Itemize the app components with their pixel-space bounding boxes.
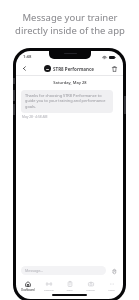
staticText: Saturday, May 28 (53, 80, 87, 85)
staticText: Message... (25, 268, 44, 273)
button[interactable]: Exercise (38, 278, 59, 293)
button[interactable]: Photos (80, 278, 101, 293)
staticText: More (108, 288, 115, 291)
button[interactable]: Back (20, 64, 29, 73)
staticText: May 28 · 4:58 AM (22, 115, 48, 119)
button[interactable]: Delete conversation (110, 64, 119, 73)
button[interactable]: Attach file (110, 267, 118, 275)
staticText: Message your trainer (22, 11, 118, 24)
staticText: directly inside of the app (15, 24, 125, 37)
staticText: Exercise (44, 288, 54, 291)
staticText: STR8 Performance (53, 66, 94, 72)
staticText: Thanks for choosing STR8 Performance to … (25, 93, 109, 110)
staticText: S8 (46, 67, 49, 70)
button[interactable]: Dashboard (17, 278, 38, 293)
button[interactable]: S8 (44, 65, 94, 72)
staticText: Track (66, 288, 73, 291)
button[interactable]: Message... (21, 266, 106, 275)
button[interactable]: More (101, 278, 122, 293)
staticText: Photos (86, 288, 95, 291)
button[interactable]: Track (59, 278, 80, 293)
staticText: 1:48 (23, 54, 32, 60)
staticText: Dashboard (21, 288, 35, 291)
